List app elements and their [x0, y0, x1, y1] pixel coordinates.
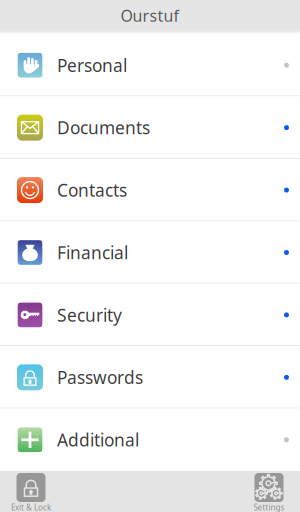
staticText: Personal	[57, 54, 127, 77]
staticText: Security	[57, 303, 122, 326]
button[interactable]: Personal	[0, 34, 300, 96]
button[interactable]: Settings	[239, 473, 299, 512]
button[interactable]: Financial	[0, 221, 300, 284]
button[interactable]: Additional	[0, 409, 300, 471]
staticText: Settings	[253, 502, 284, 512]
button[interactable]: Security	[0, 284, 300, 346]
staticText: Passwords	[57, 366, 143, 389]
button[interactable]: Passwords	[0, 346, 300, 408]
staticText: Financial	[57, 241, 128, 264]
button[interactable]: Exit and Lock	[1, 473, 61, 512]
staticText: Additional	[57, 428, 139, 451]
staticText: Documents	[57, 116, 150, 139]
button[interactable]: Contacts	[0, 159, 300, 221]
staticText: Exit & Lock	[11, 502, 51, 512]
staticText: Ourstuf	[120, 5, 179, 26]
button[interactable]: Documents	[0, 96, 300, 159]
staticText: Contacts	[57, 179, 127, 202]
